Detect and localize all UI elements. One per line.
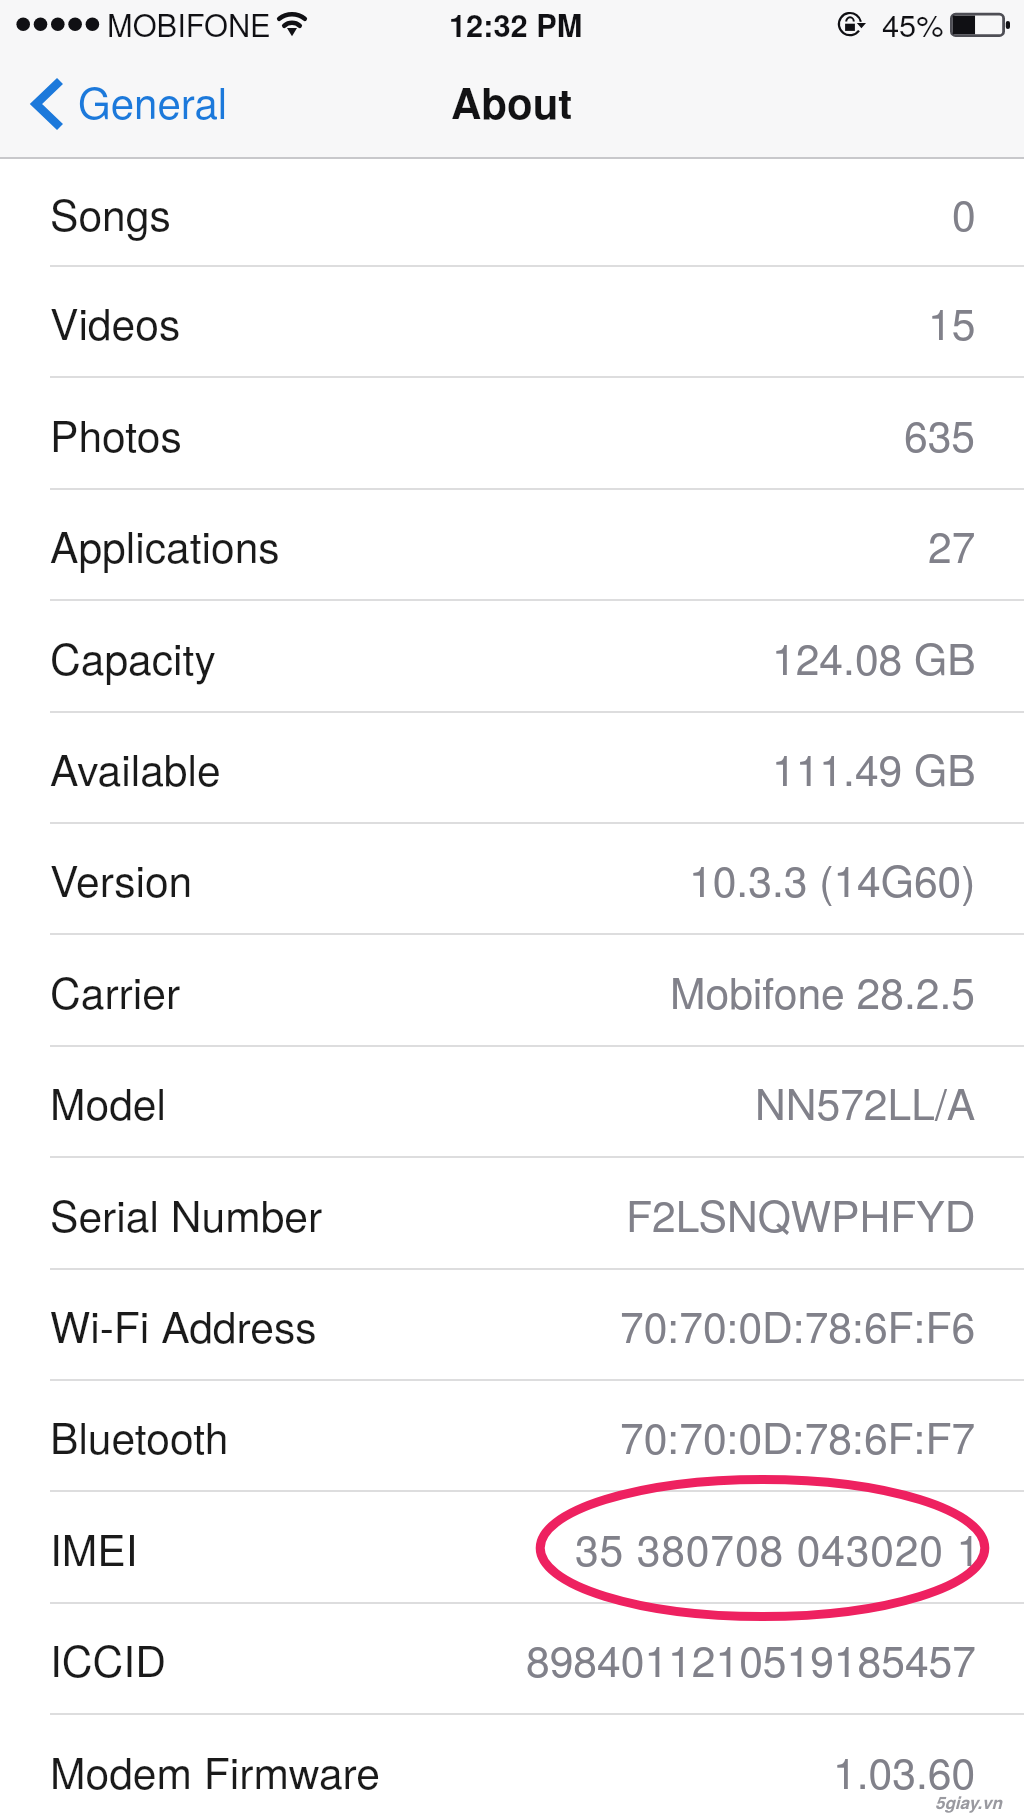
staticText: Songs bbox=[50, 182, 171, 243]
other: Signal, Wi-Fi, rotation lock and battery… bbox=[0, 0, 1024, 50]
button[interactable]: Modem Firmware bbox=[0, 1716, 1024, 1820]
staticText: 35 380708 043020 1 bbox=[575, 1517, 982, 1578]
staticText: 45% bbox=[882, 2, 944, 46]
staticText: NN572LL/A bbox=[755, 1071, 976, 1132]
staticText: 15 bbox=[928, 291, 976, 352]
button[interactable]: Songs bbox=[0, 159, 1024, 267]
button[interactable]: Photos bbox=[0, 379, 1024, 490]
staticText: 27 bbox=[928, 514, 976, 575]
button[interactable]: Model bbox=[0, 1047, 1024, 1158]
staticText: Carrier bbox=[50, 960, 181, 1021]
button[interactable]: Videos bbox=[0, 267, 1024, 378]
button[interactable]: IMEI bbox=[0, 1493, 1024, 1604]
staticText: 5giay.vn bbox=[935, 1790, 1002, 1814]
staticText: F2LSNQWPHFYD bbox=[626, 1183, 976, 1244]
staticText: Model bbox=[50, 1071, 166, 1132]
button[interactable]: Serial Number bbox=[0, 1159, 1024, 1270]
other: Back to General bbox=[18, 62, 79, 146]
button[interactable]: Available bbox=[0, 713, 1024, 824]
button[interactable]: Back to General bbox=[18, 62, 229, 146]
button[interactable]: ICCID bbox=[0, 1604, 1024, 1715]
staticText: Capacity bbox=[50, 626, 216, 687]
button[interactable]: Version bbox=[0, 824, 1024, 935]
staticText: 70:70:0D:78:6F:F6 bbox=[620, 1294, 976, 1355]
staticText: Modem Firmware bbox=[50, 1740, 381, 1801]
staticText: 10.3.3 (14G60) bbox=[689, 848, 976, 909]
staticText: About bbox=[451, 72, 573, 132]
staticText: 70:70:0D:78:6F:F7 bbox=[620, 1405, 976, 1466]
button[interactable]: Capacity bbox=[0, 602, 1024, 713]
staticText: Bluetooth bbox=[50, 1405, 229, 1466]
staticText: 124.08 GB bbox=[772, 626, 976, 687]
staticText: Available bbox=[50, 737, 221, 798]
staticText: 0 bbox=[952, 182, 976, 243]
button[interactable]: Wi-Fi Address bbox=[0, 1270, 1024, 1381]
staticText: IMEI bbox=[50, 1517, 138, 1578]
staticText: Serial Number bbox=[50, 1183, 323, 1244]
staticText: MOBIFONE bbox=[107, 2, 271, 46]
staticText: 1.03.60 bbox=[833, 1740, 976, 1801]
staticText: Mobifone 28.2.5 bbox=[670, 960, 976, 1021]
staticText: Wi-Fi Address bbox=[50, 1294, 317, 1355]
button[interactable]: Bluetooth bbox=[0, 1381, 1024, 1492]
staticText: ICCID bbox=[50, 1628, 166, 1689]
button[interactable]: Applications bbox=[0, 490, 1024, 601]
staticText: General bbox=[78, 71, 228, 131]
staticText: Version bbox=[50, 848, 193, 909]
staticText: Photos bbox=[50, 403, 182, 464]
staticText: Videos bbox=[50, 291, 181, 352]
staticText: 8984011210519185457 bbox=[526, 1628, 976, 1689]
button[interactable]: Carrier bbox=[0, 936, 1024, 1047]
staticText: Applications bbox=[50, 514, 280, 575]
staticText: 635 bbox=[904, 403, 976, 464]
staticText: 111.49 GB bbox=[772, 737, 976, 798]
staticText: 12:32 PM bbox=[449, 2, 583, 46]
